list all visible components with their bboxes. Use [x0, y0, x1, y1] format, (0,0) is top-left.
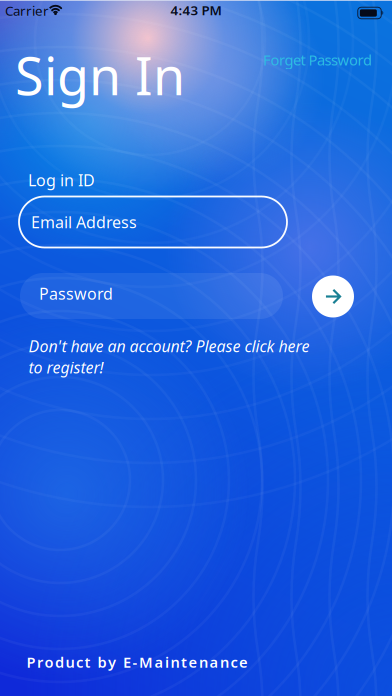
- staticText: 4:43 PM: [170, 1, 221, 19]
- staticText: Don't have an account? Please click here…: [28, 335, 309, 378]
- button[interactable]: Password: [20, 273, 283, 319]
- button[interactable]: Sign In: [312, 275, 354, 317]
- staticText: Product by E-Maintenance: [26, 652, 248, 672]
- staticText: Sign In: [15, 40, 185, 110]
- button[interactable]: Don't have an account? Please click here…: [28, 335, 309, 378]
- button[interactable]: Forget Password: [222, 50, 372, 69]
- staticText: Email Address: [31, 211, 137, 233]
- staticText: Forget Password: [263, 50, 372, 69]
- staticText: Log in ID: [28, 169, 95, 191]
- staticText: Carrier: [5, 2, 49, 19]
- button[interactable]: Email Address: [19, 196, 287, 247]
- staticText: Password: [39, 283, 113, 304]
